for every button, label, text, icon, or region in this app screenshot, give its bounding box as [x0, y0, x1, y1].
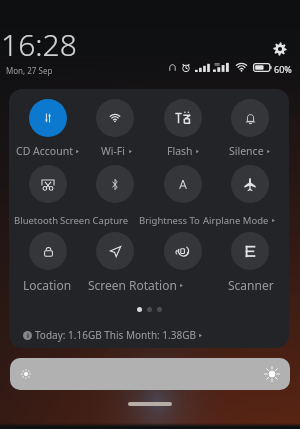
staticText: Airplane Mode	[203, 214, 269, 227]
button[interactable]	[217, 165, 283, 217]
button[interactable]	[15, 165, 81, 217]
button[interactable]	[150, 165, 216, 217]
button[interactable]	[82, 232, 148, 284]
staticText: Location	[23, 277, 72, 293]
staticText: Flash	[167, 144, 193, 158]
staticText: Screen	[88, 277, 127, 293]
staticText: Silence	[229, 144, 264, 158]
button[interactable]	[217, 99, 283, 151]
staticText: Screen Capture	[60, 214, 129, 227]
button[interactable]	[150, 232, 216, 284]
button[interactable]: Settings	[269, 38, 290, 59]
staticText: Mon, 27 Sep	[6, 65, 53, 76]
staticText: 16:28	[1, 24, 77, 65]
staticText: Rotation	[129, 277, 177, 293]
staticText: Wi-Fi	[101, 144, 126, 158]
button[interactable]	[217, 232, 283, 284]
button[interactable]	[15, 99, 81, 151]
staticText: CD Account	[16, 144, 73, 158]
button[interactable]	[15, 232, 81, 284]
staticText: Brightness To	[139, 214, 200, 227]
staticText: Scanner	[228, 277, 274, 293]
staticText: 60%	[274, 63, 292, 75]
staticText: Today: 1.16GB This Month: 1.38GB	[35, 328, 196, 342]
button[interactable]	[150, 99, 216, 151]
button[interactable]: Brightness	[10, 358, 290, 390]
button[interactable]	[82, 99, 148, 151]
staticText: Bluetooth	[14, 214, 59, 227]
button[interactable]	[82, 165, 148, 217]
